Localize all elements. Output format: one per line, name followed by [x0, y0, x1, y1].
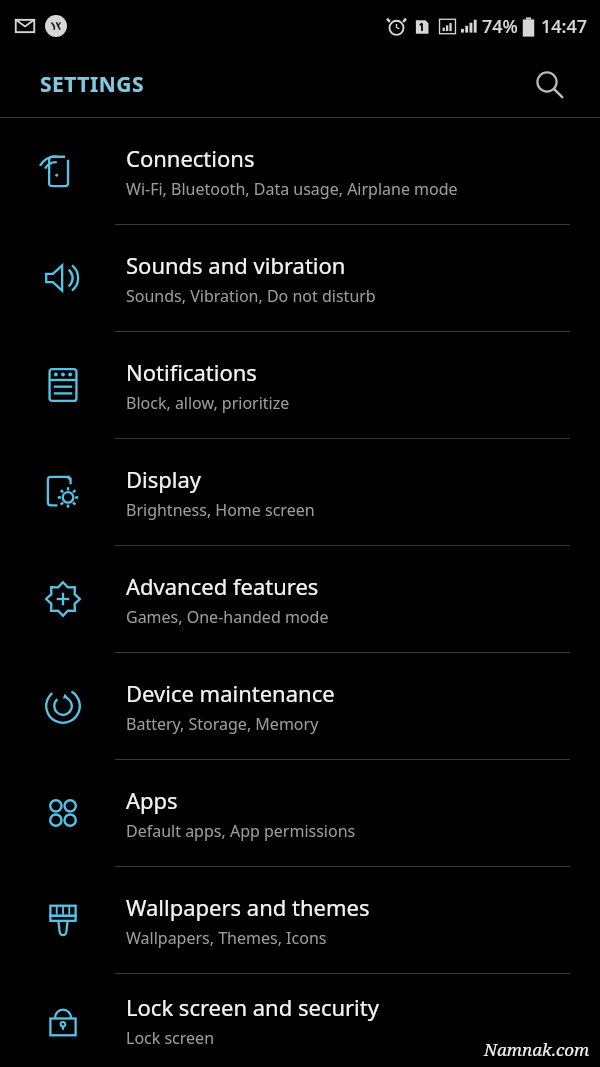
- button[interactable]: Lock screen and security: [0, 974, 600, 1067]
- staticText: Notifications: [126, 357, 257, 387]
- staticText: Battery, Storage, Memory: [126, 713, 319, 735]
- staticText: 14:47: [541, 14, 588, 39]
- button[interactable]: Connections: [0, 118, 600, 225]
- staticText: Display: [126, 464, 202, 494]
- staticText: Advanced features: [126, 571, 319, 601]
- button[interactable]: Wallpapers and themes: [0, 867, 600, 974]
- staticText: Connections: [126, 143, 255, 173]
- button[interactable]: Display: [0, 439, 600, 546]
- staticText: Lock screen: [126, 1027, 215, 1049]
- staticText: Games, One-handed mode: [126, 606, 329, 628]
- staticText: Apps: [126, 785, 178, 815]
- button[interactable]: Apps: [0, 760, 600, 867]
- staticText: Default apps, App permissions: [126, 820, 356, 842]
- button[interactable]: Advanced features: [0, 546, 600, 653]
- staticText: Sounds, Vibration, Do not disturb: [126, 285, 376, 307]
- staticText: SETTINGS: [40, 70, 145, 99]
- staticText: Brightness, Home screen: [126, 499, 315, 521]
- staticText: Wi-Fi, Bluetooth, Data usage, Airplane m…: [126, 178, 458, 200]
- button[interactable]: Notifications: [0, 332, 600, 439]
- button[interactable]: Search: [528, 63, 572, 107]
- staticText: Device maintenance: [126, 678, 335, 708]
- staticText: Wallpapers, Themes, Icons: [126, 927, 327, 949]
- staticText: Namnak.com: [484, 1038, 590, 1061]
- staticText: Wallpapers and themes: [126, 892, 370, 922]
- button[interactable]: Sounds and vibration: [0, 225, 600, 332]
- staticText: Sounds and vibration: [126, 250, 346, 280]
- staticText: Lock screen and security: [126, 992, 379, 1022]
- staticText: 74%: [482, 14, 518, 39]
- button[interactable]: Device maintenance: [0, 653, 600, 760]
- staticText: Block, allow, prioritize: [126, 392, 290, 414]
